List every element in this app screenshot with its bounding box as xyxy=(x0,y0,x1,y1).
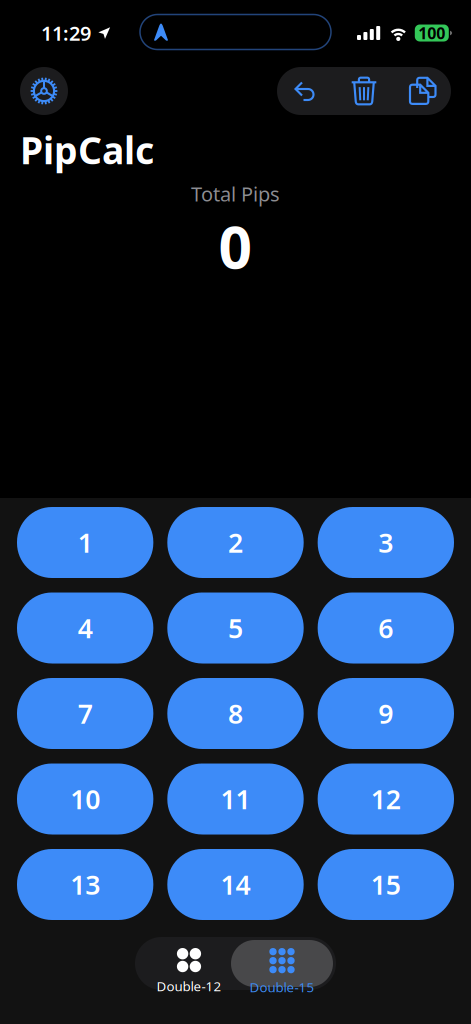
staticText: 9 xyxy=(378,696,393,731)
button[interactable]: Double-12 xyxy=(138,940,231,987)
button[interactable]: Clear xyxy=(335,68,393,114)
button[interactable]: 2 xyxy=(167,507,304,578)
staticText: 12 xyxy=(371,781,401,817)
button[interactable]: 1 xyxy=(17,507,153,578)
staticText: PipCalc xyxy=(20,125,154,175)
staticText: Double-12 xyxy=(156,977,221,995)
button[interactable]: Double-15 xyxy=(231,940,333,987)
button[interactable]: Copy xyxy=(393,68,451,114)
staticText: 7 xyxy=(78,696,93,731)
staticText: 1 xyxy=(78,525,93,560)
staticText: 0 xyxy=(218,207,252,285)
staticText: 11:29 xyxy=(41,20,91,46)
button[interactable]: 15 xyxy=(318,849,454,920)
button[interactable]: 5 xyxy=(167,592,304,663)
staticText: 2 xyxy=(228,525,243,560)
button[interactable]: 4 xyxy=(17,592,153,663)
staticText: 3 xyxy=(378,525,393,560)
staticText: 13 xyxy=(70,867,100,902)
staticText: 14 xyxy=(220,867,250,902)
button[interactable]: 9 xyxy=(318,678,454,749)
button[interactable]: 14 xyxy=(167,849,304,920)
staticText: 4 xyxy=(78,610,93,646)
staticText: 8 xyxy=(228,696,243,731)
button[interactable]: 12 xyxy=(318,763,454,834)
button[interactable]: 8 xyxy=(167,678,304,749)
staticText: Double-15 xyxy=(249,978,314,996)
staticText: 6 xyxy=(378,610,393,646)
staticText: 10 xyxy=(70,781,100,817)
button[interactable]: 6 xyxy=(318,592,454,663)
button[interactable]: Settings xyxy=(20,67,68,115)
button[interactable]: 3 xyxy=(318,507,454,578)
button[interactable]: Undo xyxy=(277,68,335,114)
button[interactable]: 13 xyxy=(17,849,153,920)
staticText: Total Pips xyxy=(191,181,280,207)
staticText: 15 xyxy=(371,867,401,902)
staticText: 11 xyxy=(220,781,250,817)
staticText: 100 xyxy=(418,22,445,44)
button[interactable]: 11 xyxy=(167,763,304,834)
button[interactable]: 10 xyxy=(17,763,153,834)
staticText: 5 xyxy=(228,610,243,646)
button[interactable]: 7 xyxy=(17,678,153,749)
